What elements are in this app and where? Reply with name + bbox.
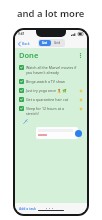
button[interactable]: Send	[75, 130, 82, 137]
button[interactable]: Back	[17, 40, 31, 47]
button[interactable]	[36, 127, 78, 139]
staticText: List	[42, 41, 48, 45]
staticText: Grid	[54, 41, 61, 45]
staticText: Done	[19, 50, 39, 60]
staticText: Add a task	[19, 206, 36, 211]
staticText: Sleep for 12 hours at a stretch!	[26, 106, 77, 116]
button[interactable]: Get a quarantine hair cut	[19, 95, 83, 104]
button[interactable]: More options	[77, 52, 83, 58]
staticText: Get a quarantine hair cut	[26, 97, 77, 102]
staticText: 9:41	[18, 32, 25, 36]
staticText: Binge-watch a TV show	[26, 79, 83, 84]
button[interactable]: Add a task	[18, 205, 37, 212]
staticText: Just try yoga once 🧘 🌿	[26, 88, 77, 93]
button[interactable]: More	[44, 206, 55, 211]
button[interactable]: Sleep for 12 hours at a stretch!	[19, 104, 83, 118]
staticText: and a lot more	[17, 7, 85, 20]
button[interactable]: Just try yoga once 🧘 🌿	[19, 86, 83, 95]
button[interactable]: Watch all the Marvel movies if you haven…	[19, 63, 83, 77]
staticText: Watch all the Marvel movies if you haven…	[26, 65, 83, 75]
button[interactable]: Grid	[51, 40, 64, 46]
staticText: Back	[22, 41, 30, 46]
button[interactable]: Binge-watch a TV show	[19, 77, 83, 86]
button[interactable]: List	[39, 40, 51, 46]
